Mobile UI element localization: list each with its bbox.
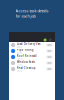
staticText: Open <box>47 62 51 64</box>
staticText: 11:00 AM <box>17 58 23 60</box>
button[interactable]: Open <box>46 43 53 47</box>
button[interactable]: Open <box>46 61 53 65</box>
staticText: Load Delivery Van <box>17 42 41 46</box>
button[interactable]: Open <box>46 49 53 53</box>
staticText: Open <box>47 50 51 52</box>
staticText: Window Seals <box>17 60 35 64</box>
staticText: Open <box>47 68 51 70</box>
staticText: 1:15 PM <box>17 64 22 66</box>
button[interactable]: Open <box>46 67 53 71</box>
staticText: Access task details for each job <box>15 8 48 19</box>
staticText: Open <box>47 56 51 58</box>
staticText: 3:45 PM <box>17 70 22 72</box>
staticText: Final Cleanup <box>17 66 36 70</box>
staticText: Pipe Fitting <box>17 48 34 52</box>
staticText: Open <box>47 44 51 46</box>
staticText: Roof Reinstall <box>17 54 37 58</box>
button[interactable]: Open <box>46 55 53 59</box>
